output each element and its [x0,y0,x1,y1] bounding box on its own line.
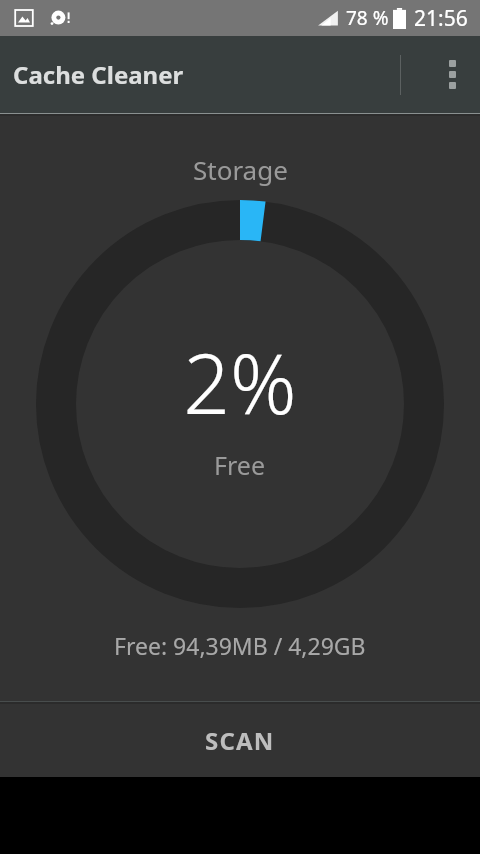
staticText: SCAN [205,724,275,757]
staticText: 2% [183,326,297,438]
staticText: Free: 94,39MB / 4,29GB [114,630,366,661]
staticText: Storage [193,152,288,187]
button[interactable]: More options [424,36,480,113]
staticText: 78 % [346,5,389,31]
button[interactable]: SCAN [0,704,480,777]
staticText: Cache Cleaner [13,58,184,91]
staticText: Free [214,448,266,482]
staticText: 21:56 [414,4,468,33]
